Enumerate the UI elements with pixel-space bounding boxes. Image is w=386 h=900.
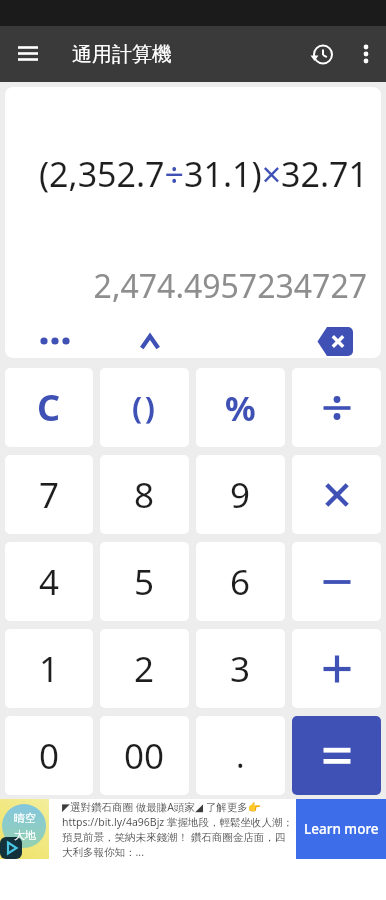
button[interactable]: 5 [100,542,189,621]
staticText: 00 [124,732,165,780]
staticText: 9 [230,471,251,519]
button[interactable]: 2 [100,629,189,708]
button[interactable]: 4 [5,542,93,621]
button[interactable]: 3 [196,629,285,708]
staticText: 4 [39,558,60,606]
button[interactable]: 00 [100,716,189,795]
button[interactable]: . [196,716,285,795]
button[interactable]: 8 [100,455,189,534]
staticText: 7 [39,471,60,519]
button[interactable] [33,326,77,356]
button[interactable] [292,455,381,534]
staticText: Learn more [304,820,379,838]
button[interactable] [0,26,56,82]
button[interactable]: Learn more [296,799,386,859]
staticText: 晴空 [14,811,36,825]
button[interactable]: 1 [5,629,93,708]
staticText: 5 [134,558,155,606]
button[interactable] [130,326,170,356]
button[interactable] [313,325,357,357]
staticText: 8 [134,471,155,519]
staticText: % [225,385,256,431]
button[interactable]: 晴空 [0,799,386,859]
staticText: (2,352.7÷31.1)×32.71 [5,151,368,197]
button[interactable]: 7 [5,455,93,534]
button[interactable]: () [100,368,189,447]
button[interactable] [298,30,346,78]
staticText: C [37,383,61,432]
staticText: 2 [134,645,155,693]
button[interactable] [346,34,386,74]
button[interactable]: 9 [196,455,285,534]
staticText: () [132,387,158,428]
staticText: ◤選對鑽石商圈 做最賺A頭家◢ 了解更多👉 https://bit.ly/4a9… [62,800,294,859]
button[interactable] [292,716,381,795]
button[interactable]: % [196,368,285,447]
staticText: 2,474.4957234727 [5,264,367,308]
staticText: 0 [39,732,60,780]
staticText: 大地 [14,828,36,842]
button[interactable] [292,542,381,621]
button[interactable]: 6 [196,542,285,621]
button[interactable]: C [5,368,93,447]
staticText: 3 [230,645,251,693]
staticText: 6 [230,558,251,606]
button[interactable] [292,368,381,447]
staticText: 通用計算機 [72,42,172,67]
button[interactable] [292,629,381,708]
staticText: 1 [39,645,60,693]
staticText: . [236,734,245,778]
button[interactable]: 0 [5,716,93,795]
